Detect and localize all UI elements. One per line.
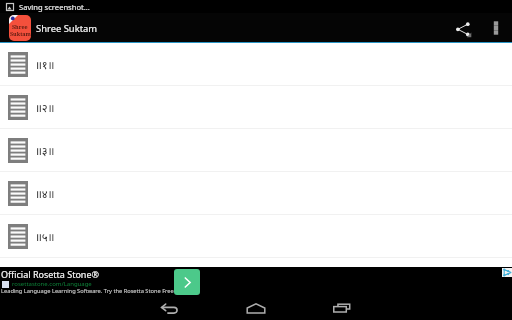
button[interactable]: ॥२॥ (0, 86, 512, 128)
staticText: ॥४॥ (35, 186, 55, 201)
staticText: ॥३॥ (35, 143, 55, 158)
button[interactable]: ॥४॥ (0, 172, 512, 214)
button[interactable]: ॥५॥ (0, 215, 512, 257)
button[interactable]: Ad choices (502, 268, 512, 277)
staticText: Shree (12, 23, 28, 30)
staticText: rosettastone.com/Language (12, 280, 92, 288)
button[interactable]: Back (148, 296, 192, 320)
button[interactable]: Home (234, 296, 278, 320)
button[interactable]: ॥३॥ (0, 129, 512, 171)
button[interactable]: ॥१॥ (0, 43, 512, 85)
staticText: ॥१॥ (35, 57, 55, 72)
staticText: Saving screenshot... (19, 2, 90, 12)
button[interactable]: App icon (9, 15, 31, 41)
staticText: Leading Language Learning Software. Try … (1, 287, 193, 295)
staticText: Suktam (10, 30, 31, 37)
staticText: ॥२॥ (35, 100, 55, 115)
staticText: Official Rosetta Stone® (1, 268, 99, 280)
staticText: Shree Suktam (36, 22, 98, 35)
staticText: ॥५॥ (35, 229, 55, 244)
button[interactable]: More options (483, 13, 509, 43)
button[interactable]: Recents (320, 296, 364, 320)
button[interactable]: Open ad (174, 269, 200, 295)
button[interactable]: Share (447, 13, 483, 43)
